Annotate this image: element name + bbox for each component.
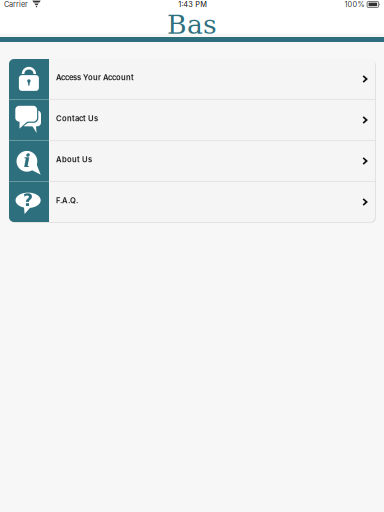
staticText: F.A.Q. (56, 196, 78, 205)
staticText: ? (23, 190, 33, 210)
staticText: Carrier (4, 0, 28, 9)
staticText: 100% (345, 0, 365, 9)
staticText: Access Your Account (56, 73, 134, 82)
button[interactable]: ? (9, 182, 375, 222)
staticText: Bas (167, 9, 217, 40)
button[interactable]: Contact Us (9, 100, 375, 140)
staticText: i (23, 150, 30, 172)
staticText: Contact Us (56, 114, 98, 123)
staticText: About Us (56, 155, 92, 164)
button[interactable]: i (9, 141, 375, 181)
button[interactable]: Access Your Account (9, 59, 375, 99)
staticText: 1:43 PM (178, 0, 207, 9)
